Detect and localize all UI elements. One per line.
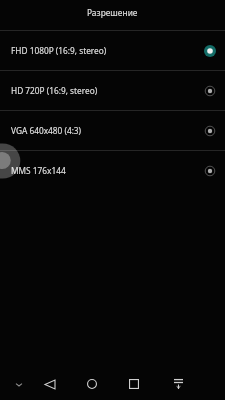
button[interactable]: Home — [71, 368, 113, 400]
button[interactable]: HD 720P (16:9, stereo) — [0, 71, 225, 110]
staticText: MMS 176x144 — [11, 165, 66, 176]
button[interactable]: Recent apps — [113, 368, 155, 400]
button[interactable]: Collapse navigation bar — [157, 368, 199, 400]
staticText: VGA 640x480 (4:3) — [11, 125, 82, 136]
staticText: HD 720P (16:9, stereo) — [11, 85, 98, 96]
staticText: FHD 1080P (16:9, stereo) — [11, 45, 107, 56]
button[interactable]: Hide navigation bar — [0, 368, 37, 400]
button[interactable]: Back — [29, 368, 71, 400]
staticText: Разрешение — [87, 7, 138, 18]
button[interactable]: FHD 1080P (16:9, stereo) — [0, 31, 225, 70]
button[interactable]: VGA 640x480 (4:3) — [0, 111, 225, 150]
button[interactable]: MMS 176x144 — [0, 151, 225, 190]
